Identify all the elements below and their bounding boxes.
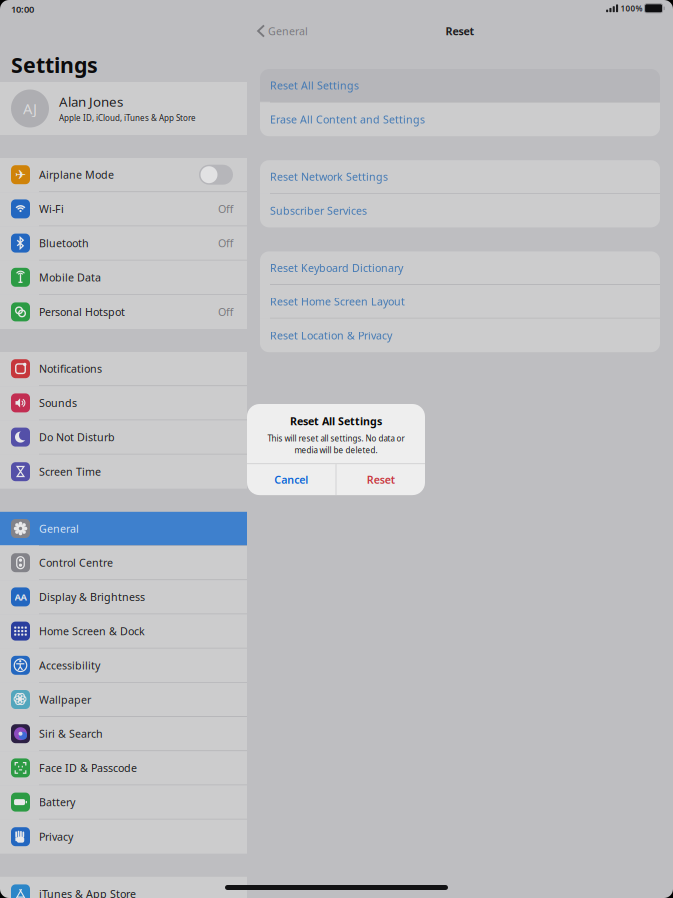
staticText: Control Centre: [39, 556, 113, 570]
staticText: 10:00: [11, 3, 34, 15]
button[interactable]: Mobile Data: [0, 261, 247, 295]
button[interactable]: Siri & Search: [0, 717, 247, 751]
button[interactable]: Control Centre: [0, 546, 247, 580]
button[interactable]: Reset Keyboard Dictionary: [260, 251, 660, 285]
staticText: Personal Hotspot: [39, 305, 125, 319]
staticText: Reset All Settings: [290, 414, 382, 428]
staticText: Reset: [445, 24, 474, 38]
staticText: Erase All Content and Settings: [270, 112, 425, 126]
staticText: Reset Location & Privacy: [270, 328, 392, 342]
button[interactable]: Accessibility: [0, 649, 247, 683]
staticText: Siri & Search: [39, 727, 103, 741]
button[interactable]: Reset All Settings: [260, 69, 660, 103]
staticText: 100%: [621, 3, 643, 14]
button[interactable]: AJ: [0, 82, 247, 135]
button[interactable]: Personal Hotspot: [0, 295, 247, 329]
staticText: Subscriber Services: [270, 203, 367, 218]
staticText: Wallpaper: [39, 692, 91, 707]
staticText: Bluetooth: [39, 236, 89, 250]
button[interactable]: Home Screen & Dock: [0, 614, 247, 649]
staticText: Face ID & Passcode: [39, 761, 137, 775]
staticText: General: [39, 521, 79, 536]
button[interactable]: AA: [0, 580, 247, 614]
staticText: Notifications: [39, 362, 102, 376]
button[interactable]: Reset: [336, 464, 425, 495]
button[interactable]: Notifications: [0, 352, 247, 386]
button[interactable]: Reset Home Screen Layout: [260, 285, 660, 319]
staticText: Wi-Fi: [39, 202, 64, 216]
button[interactable]: Privacy: [0, 820, 247, 854]
staticText: iTunes & App Store: [39, 887, 136, 898]
staticText: Accessibility: [39, 658, 100, 672]
staticText: Cancel: [274, 472, 308, 487]
staticText: Reset Keyboard Dictionary: [270, 261, 403, 275]
button[interactable]: Screen Time: [0, 455, 247, 489]
button[interactable]: ✈: [0, 158, 247, 192]
staticText: AJ: [23, 99, 37, 118]
button[interactable]: Subscriber Services: [260, 194, 660, 227]
staticText: Mobile Data: [39, 270, 101, 284]
staticText: Battery: [39, 795, 75, 809]
staticText: Off: [218, 236, 233, 250]
button[interactable]: iTunes & App Store: [0, 877, 247, 898]
staticText: AA: [14, 591, 26, 603]
staticText: Reset All Settings: [270, 78, 359, 92]
button[interactable]: Erase All Content and Settings: [260, 103, 660, 136]
button[interactable]: Face ID & Passcode: [0, 751, 247, 785]
staticText: Settings: [11, 51, 98, 79]
staticText: Off: [218, 305, 233, 319]
staticText: General: [268, 24, 308, 38]
button[interactable]: Cancel: [247, 464, 336, 495]
staticText: Alan Jones: [59, 93, 123, 110]
button[interactable]: Reset Network Settings: [260, 160, 660, 194]
button[interactable]: Reset Location & Privacy: [260, 319, 660, 352]
staticText: Off: [218, 202, 233, 216]
staticText: Display & Brightness: [39, 590, 145, 604]
button[interactable]: Wallpaper: [0, 683, 247, 717]
staticText: This will reset all settings. No data or: [267, 433, 404, 444]
button[interactable]: Battery: [0, 785, 247, 820]
staticText: Apple ID, iCloud, iTunes & App Store: [59, 112, 196, 123]
staticText: media will be deleted.: [294, 445, 377, 455]
button[interactable]: General: [0, 512, 247, 546]
staticText: Sounds: [39, 396, 77, 410]
button[interactable]: General: [247, 18, 308, 44]
staticText: Airplane Mode: [39, 168, 114, 182]
staticText: Reset Network Settings: [270, 169, 388, 184]
button[interactable]: Do Not Disturb: [0, 420, 247, 455]
staticText: Reset Home Screen Layout: [270, 294, 405, 308]
staticText: Home Screen & Dock: [39, 624, 145, 638]
staticText: Reset: [367, 472, 395, 487]
staticText: Do Not Disturb: [39, 430, 115, 444]
staticText: Screen Time: [39, 465, 101, 479]
staticText: ✈: [15, 167, 26, 182]
staticText: Privacy: [39, 830, 73, 844]
button[interactable]: Bluetooth: [0, 226, 247, 261]
button[interactable]: Sounds: [0, 386, 247, 420]
button[interactable]: Wi-Fi: [0, 192, 247, 226]
